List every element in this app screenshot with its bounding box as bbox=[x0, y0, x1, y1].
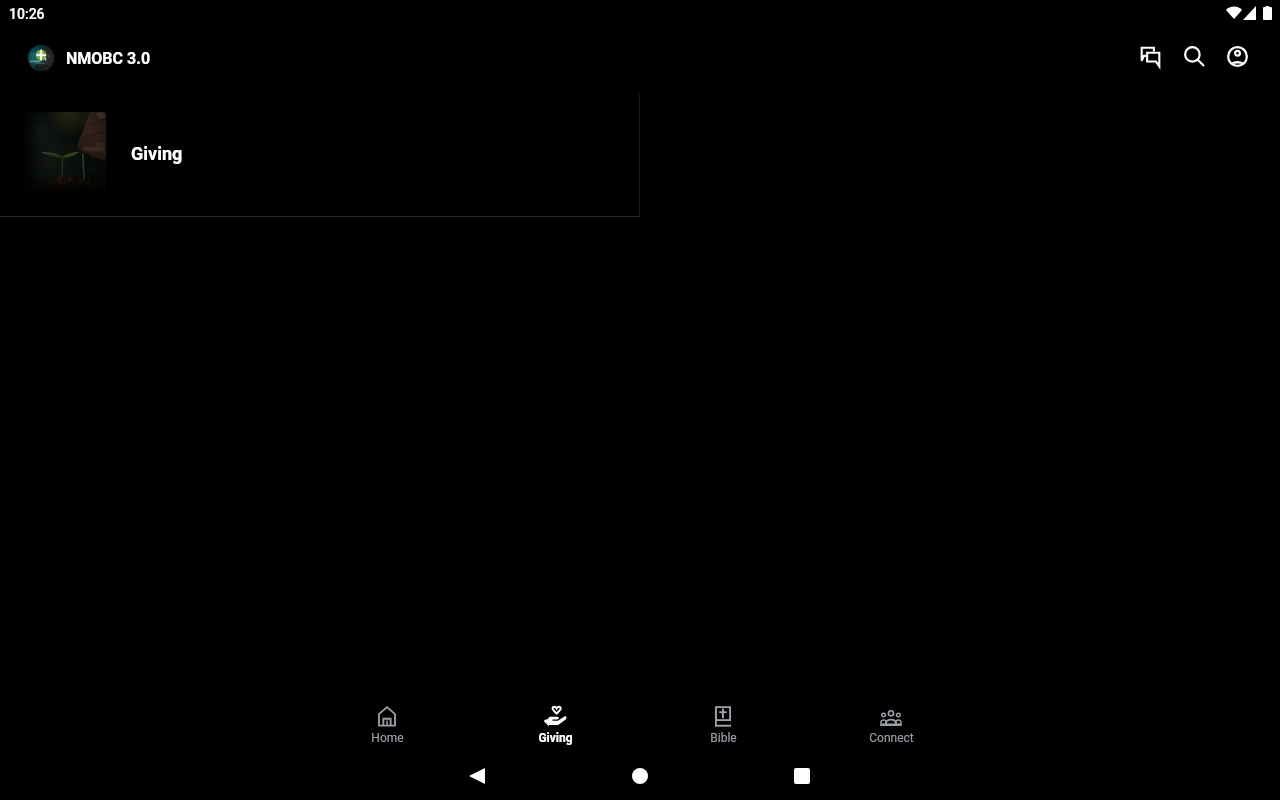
button[interactable]: Giving bbox=[0, 88, 640, 217]
button[interactable]: NMOBC 3.0 bbox=[28, 45, 151, 71]
button[interactable]: Search bbox=[1182, 44, 1206, 68]
button[interactable]: Home bbox=[628, 764, 652, 788]
staticText: Bible bbox=[710, 731, 737, 745]
staticText: 10:26 bbox=[9, 6, 45, 22]
button[interactable]: Back bbox=[465, 764, 489, 788]
button[interactable]: Recents bbox=[790, 764, 814, 788]
button[interactable]: Account bbox=[1225, 44, 1249, 68]
button[interactable]: Home bbox=[303, 666, 471, 752]
staticText: Connect bbox=[869, 731, 914, 745]
staticText: Home bbox=[371, 731, 404, 745]
button[interactable]: Messages bbox=[1138, 44, 1162, 68]
button[interactable]: Bible bbox=[639, 666, 807, 752]
staticText: NMOBC 3.0 bbox=[66, 49, 151, 68]
button[interactable]: Connect bbox=[807, 666, 975, 752]
staticText: Giving bbox=[131, 143, 183, 164]
button[interactable]: Giving bbox=[471, 666, 639, 752]
staticText: Giving bbox=[538, 731, 573, 745]
